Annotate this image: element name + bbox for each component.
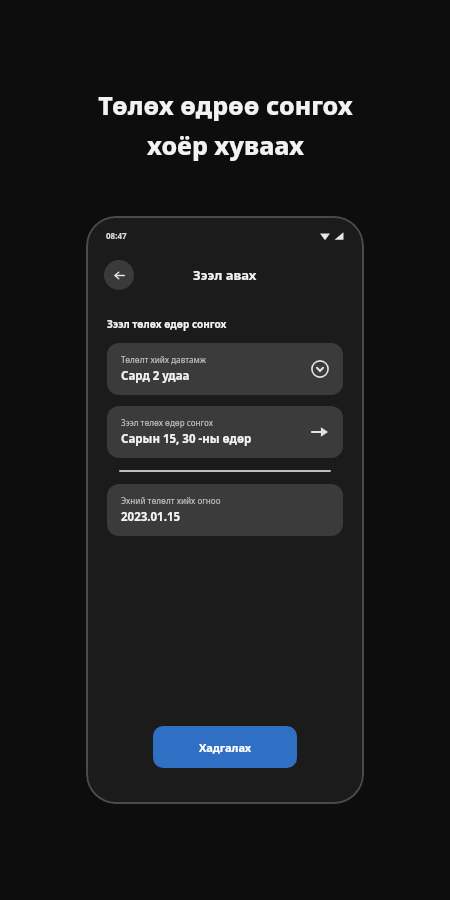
button[interactable]: Эхний төлөлт хийх огноо — [107, 484, 343, 536]
staticText: Сарын 15, 30 -ны өдөр — [121, 431, 252, 447]
other: Expand — [311, 360, 329, 378]
staticText: Төлөлт хийх давтамж — [121, 354, 207, 365]
button[interactable]: Төлөлт хийх давтамж — [107, 343, 343, 395]
button[interactable]: Back — [104, 260, 134, 290]
staticText: Сард 2 удаа — [121, 368, 190, 384]
other: Select date — [311, 423, 329, 441]
staticText: хоёр хуваах — [147, 128, 304, 162]
staticText: Зээл төлөх өдөр сонгох — [121, 417, 213, 428]
staticText: Хадгалах — [199, 740, 252, 755]
button[interactable]: Зээл төлөх өдөр сонгох — [107, 406, 343, 458]
staticText: Зээл авах — [193, 266, 257, 284]
staticText: Зээл төлөх өдөр сонгох — [107, 317, 227, 331]
staticText: Эхний төлөлт хийх огноо — [121, 495, 221, 506]
staticText: Төлөх өдрөө сонгох — [98, 88, 353, 122]
staticText: 2023.01.15 — [121, 509, 181, 525]
button[interactable]: Хадгалах — [153, 726, 297, 768]
staticText: 08:47 — [106, 230, 127, 241]
